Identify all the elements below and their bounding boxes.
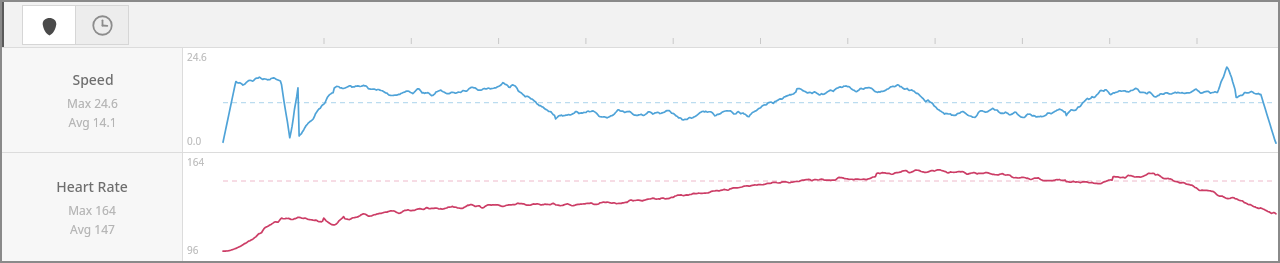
staticText: Max 24.6 xyxy=(67,95,118,111)
staticText: Max 164 xyxy=(68,202,116,218)
staticText: Avg 147 xyxy=(70,221,115,237)
button[interactable]: Speed xyxy=(2,48,182,152)
staticText: Avg 14.1 xyxy=(68,114,117,130)
staticText: Heart Rate xyxy=(56,177,128,196)
staticText: 24.6 xyxy=(187,50,207,64)
button[interactable]: Time view xyxy=(76,6,128,44)
staticText: 0.0 xyxy=(187,134,202,148)
button[interactable]: Map view xyxy=(23,6,75,44)
button[interactable]: Heart Rate xyxy=(2,153,182,261)
staticText: 164 xyxy=(187,155,205,169)
staticText: Speed xyxy=(72,70,114,89)
staticText: 96 xyxy=(187,243,199,257)
